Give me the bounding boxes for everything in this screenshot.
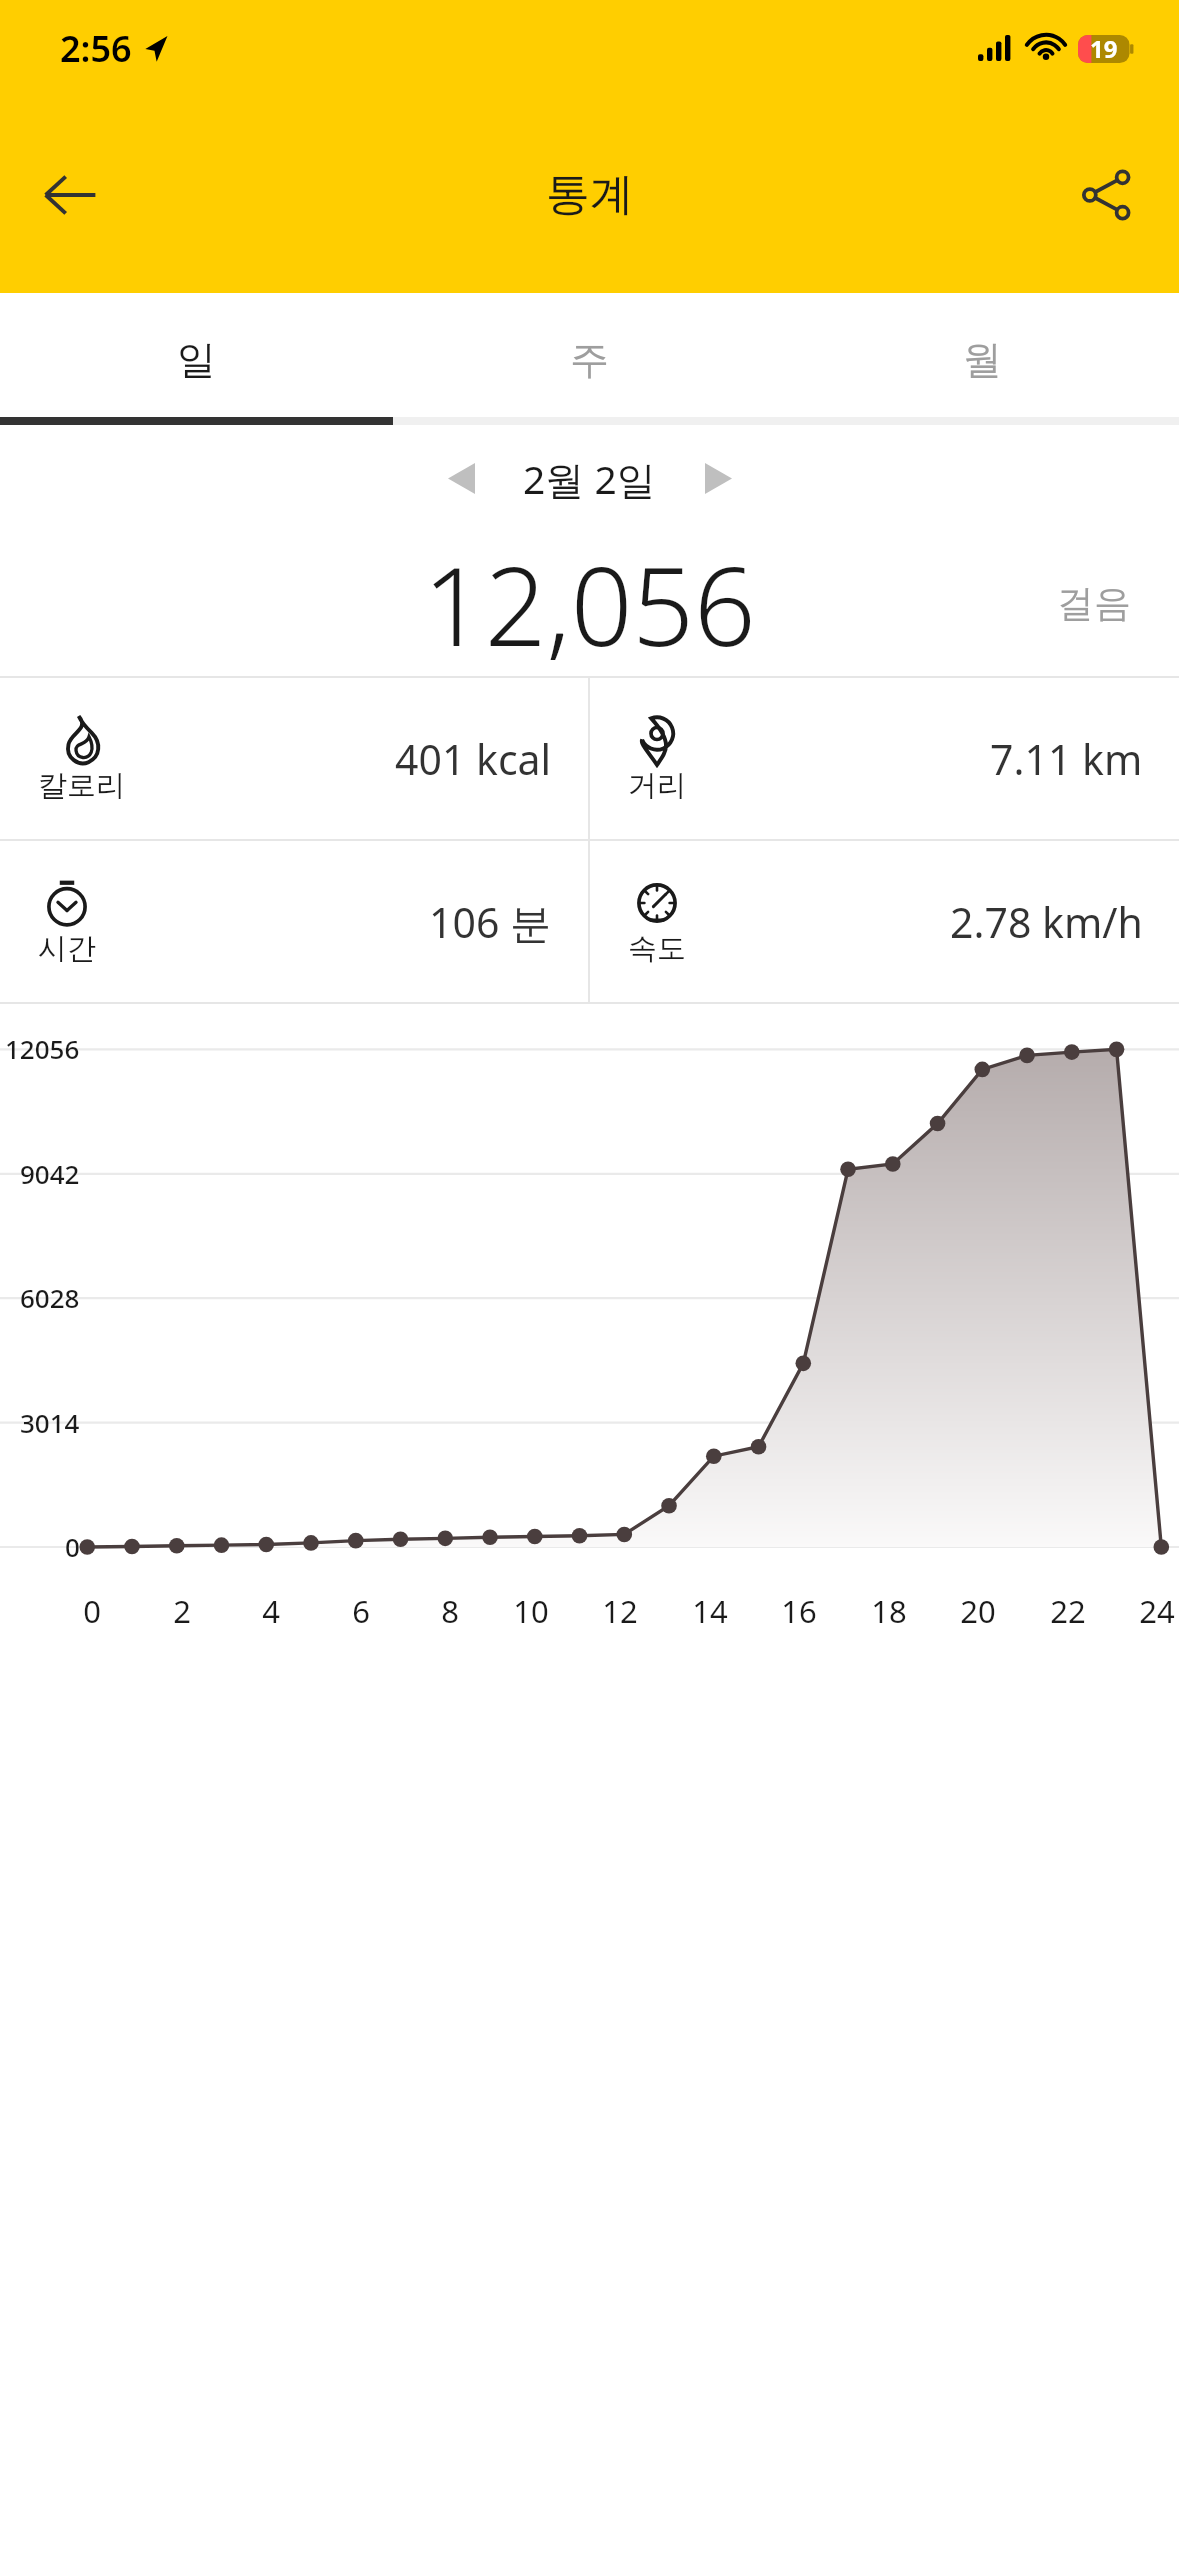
staticText: 2.78 km/h bbox=[950, 894, 1143, 950]
button[interactable]: Next day bbox=[678, 438, 758, 518]
staticText: 칼로리 bbox=[38, 767, 125, 804]
button[interactable]: 속도 bbox=[590, 841, 1179, 1002]
staticText: 19 bbox=[1090, 32, 1118, 65]
button[interactable]: 월 bbox=[786, 293, 1179, 425]
button[interactable]: Previous day bbox=[421, 438, 501, 518]
staticText: 거리 bbox=[628, 767, 686, 804]
staticText: 12056 bbox=[5, 1031, 80, 1066]
button[interactable]: 칼로리 bbox=[0, 678, 588, 839]
button[interactable]: 주 bbox=[393, 293, 786, 425]
staticText: 12,056 bbox=[423, 531, 756, 676]
staticText: 3014 bbox=[20, 1405, 80, 1440]
staticText: 12 bbox=[602, 1590, 638, 1632]
staticText: 주 bbox=[570, 335, 609, 384]
staticText: 106 분 bbox=[429, 894, 552, 950]
staticText: 2 bbox=[173, 1590, 191, 1632]
staticText: 18 bbox=[871, 1590, 907, 1632]
staticText: 0 bbox=[65, 1529, 80, 1564]
staticText: 14 bbox=[692, 1590, 728, 1632]
button[interactable]: 시간 bbox=[0, 841, 588, 1002]
staticText: 8 bbox=[441, 1590, 459, 1632]
staticText: 시간 bbox=[38, 930, 96, 967]
button[interactable]: Back bbox=[18, 143, 122, 247]
staticText: 월 bbox=[963, 335, 1002, 384]
button[interactable]: 일 bbox=[0, 293, 393, 425]
staticText: 속도 bbox=[628, 930, 686, 967]
staticText: 20 bbox=[960, 1590, 996, 1632]
staticText: 16 bbox=[781, 1590, 817, 1632]
staticText: 401 kcal bbox=[395, 731, 552, 787]
staticText: 7.11 km bbox=[990, 731, 1143, 787]
button[interactable]: Share bbox=[1055, 143, 1159, 247]
staticText: 4 bbox=[262, 1590, 280, 1632]
staticText: 9042 bbox=[20, 1156, 80, 1191]
staticText: 0 bbox=[83, 1590, 101, 1632]
staticText: 일 bbox=[177, 335, 216, 384]
staticText: 2:56 bbox=[60, 24, 132, 73]
staticText: 6 bbox=[352, 1590, 370, 1632]
button[interactable]: 거리 bbox=[590, 678, 1179, 839]
staticText: 6028 bbox=[20, 1280, 80, 1315]
staticText: 10 bbox=[513, 1590, 549, 1632]
staticText: 통계 bbox=[546, 167, 634, 222]
staticText: 24 bbox=[1139, 1590, 1175, 1632]
staticText: 2월 2일 bbox=[523, 452, 656, 505]
staticText: 22 bbox=[1050, 1590, 1086, 1632]
staticText: 걸음 bbox=[1057, 580, 1131, 627]
